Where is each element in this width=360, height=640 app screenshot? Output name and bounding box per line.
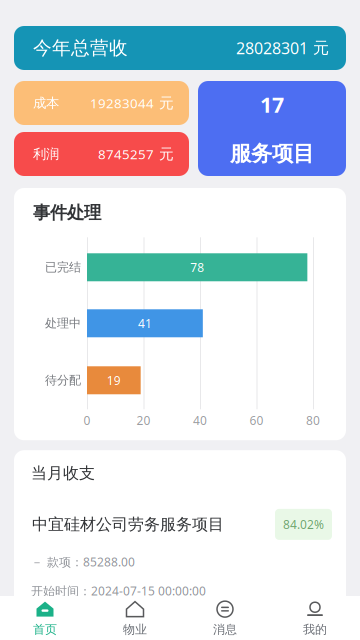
staticText: 待分配 [45, 373, 81, 388]
staticText: 8745257 [98, 145, 154, 163]
staticText: 41 [138, 315, 152, 331]
staticText: 元 [313, 38, 329, 58]
button[interactable]: 成本 [14, 81, 189, 125]
button[interactable]: 17 [198, 81, 346, 176]
staticText: 已完结 [45, 260, 81, 275]
staticText: 19283044 [90, 94, 154, 112]
staticText: 消息 [213, 622, 237, 637]
staticText: 今年总营收 [33, 36, 128, 59]
staticText: 28028301 [236, 37, 308, 59]
button[interactable]: 消息 [180, 596, 270, 640]
staticText: 中宜硅材公司劳务服务项目 [32, 515, 224, 534]
staticText: 40 [193, 412, 207, 428]
button[interactable]: 物业 [90, 596, 180, 640]
staticText: 事件处理 [33, 202, 101, 223]
button[interactable]: 今年总营收 [14, 26, 346, 70]
staticText: 成本 [33, 95, 59, 111]
staticText: 0 [83, 412, 90, 428]
staticText: 元 [159, 94, 174, 112]
staticText: 利润 [33, 146, 59, 162]
staticText: 服务项目 [230, 141, 314, 167]
staticText: 17 [260, 90, 284, 118]
button[interactable]: 利润 [14, 132, 189, 176]
staticText: 60 [249, 412, 263, 428]
staticText: 物业 [123, 622, 147, 637]
staticText: 开始时间：2024-07-15 00:00:00 [31, 583, 206, 599]
staticText: － 款项：85288.00 [31, 554, 135, 570]
button[interactable]: 首页 [0, 596, 90, 640]
staticText: 当月收支 [31, 463, 95, 483]
staticText: 首页 [33, 622, 57, 637]
staticText: 我的 [303, 622, 327, 637]
button[interactable]: 我的 [270, 596, 360, 640]
staticText: 20 [136, 412, 150, 428]
staticText: 19 [107, 372, 121, 388]
staticText: 84.02% [283, 516, 324, 532]
staticText: 元 [159, 145, 174, 163]
staticText: 78 [190, 259, 204, 275]
staticText: 80 [306, 412, 320, 428]
staticText: 处理中 [45, 316, 81, 331]
